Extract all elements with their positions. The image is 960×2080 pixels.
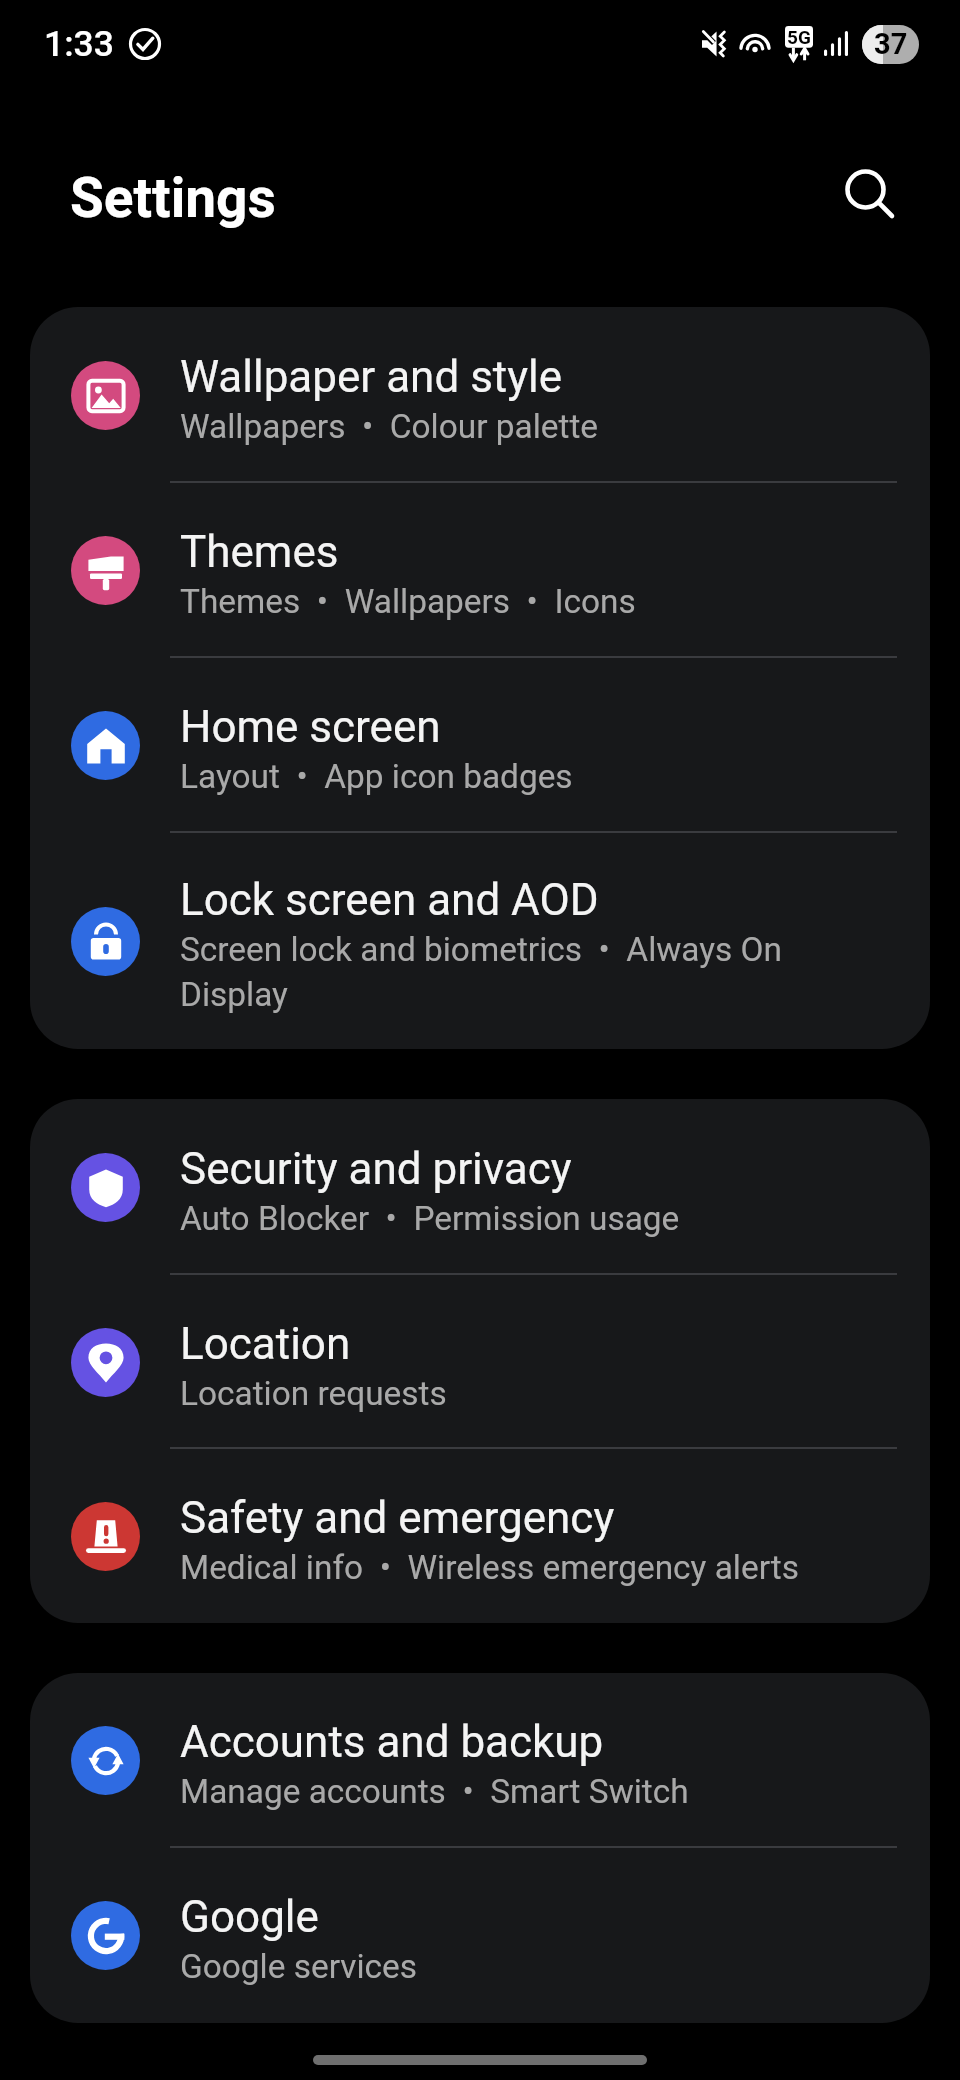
staticText: 5G [787, 26, 811, 48]
staticText: Lock screen and AOD [180, 874, 599, 926]
button[interactable]: Themes [30, 483, 930, 658]
button[interactable]: Accounts and backup [30, 1673, 930, 1848]
staticText: Manage accounts • Smart Switch [180, 1772, 689, 1811]
staticText: Settings [70, 166, 276, 230]
staticText: Safety and emergency [180, 1492, 615, 1544]
button[interactable]: Location [30, 1275, 930, 1449]
staticText: Location requests [180, 1374, 447, 1413]
staticText: Medical info • Wireless emergency alerts [180, 1548, 799, 1587]
button[interactable]: Lock screen and AOD [30, 833, 930, 1049]
staticText: Google services [180, 1947, 417, 1986]
staticText: Wallpaper and style [180, 351, 563, 403]
staticText: Wallpapers • Colour palette [180, 407, 599, 446]
button[interactable]: Safety and emergency [30, 1449, 930, 1623]
staticText: 1:33 [44, 23, 114, 65]
button[interactable]: Security and privacy [30, 1099, 930, 1275]
staticText: Accounts and backup [180, 1716, 604, 1768]
staticText: Location [180, 1318, 351, 1370]
staticText: Screen lock and biometrics • Always On D… [180, 930, 896, 1014]
staticText: Security and privacy [180, 1143, 572, 1195]
staticText: Themes [180, 526, 339, 578]
staticText: Auto Blocker • Permission usage [180, 1199, 680, 1238]
staticText: Google [180, 1891, 319, 1943]
staticText: Home screen [180, 701, 441, 753]
button[interactable]: Wallpaper and style [30, 307, 930, 483]
button[interactable]: Search [829, 153, 913, 237]
button[interactable]: Google [30, 1848, 930, 2023]
staticText: Themes • Wallpapers • Icons [180, 582, 636, 621]
staticText: 37 [874, 27, 908, 61]
staticText: Layout • App icon badges [180, 757, 573, 796]
button[interactable]: Home screen [30, 658, 930, 833]
